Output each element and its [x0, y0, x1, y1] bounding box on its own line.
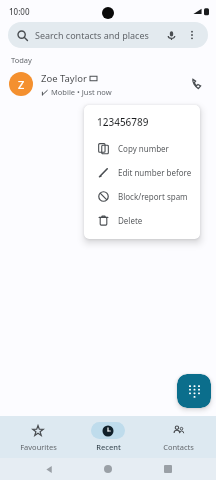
button[interactable]: Back	[38, 458, 60, 480]
staticText: Favourites	[20, 442, 57, 452]
staticText: Edit number before call	[118, 167, 200, 178]
button[interactable]: Copy number	[84, 136, 200, 160]
button[interactable]: Voice search	[164, 28, 178, 42]
button[interactable]: Open dial pad	[177, 374, 211, 408]
button[interactable]: Edit number before call	[84, 160, 200, 184]
button[interactable]: Delete	[84, 208, 200, 232]
button[interactable]: Call	[187, 74, 207, 94]
button[interactable]: Block/report spam	[84, 184, 200, 208]
button[interactable]: Recent	[76, 420, 140, 454]
staticText: Zoe Taylor	[41, 72, 87, 85]
button[interactable]: Home	[97, 458, 119, 480]
staticText: Recent	[96, 442, 121, 452]
staticText: Copy number	[118, 143, 169, 154]
button[interactable]: Search contacts and places	[8, 22, 208, 48]
staticText: Search contacts and places	[35, 29, 149, 41]
staticText: Today	[11, 55, 32, 65]
button[interactable]: Favourites	[6, 420, 70, 454]
button[interactable]: Z	[0, 65, 216, 103]
staticText: Contacts	[163, 442, 194, 452]
staticText: Z	[18, 77, 25, 92]
staticText: 10:00	[9, 6, 30, 17]
staticText: Mobile • Just now	[51, 87, 112, 97]
staticText: Block/report spam	[118, 191, 188, 202]
button[interactable]: More options	[185, 28, 199, 42]
button[interactable]: Contacts	[146, 420, 210, 454]
staticText: Delete	[118, 215, 143, 226]
button[interactable]: Recent apps	[157, 458, 179, 480]
staticText: 123456789	[97, 115, 149, 129]
